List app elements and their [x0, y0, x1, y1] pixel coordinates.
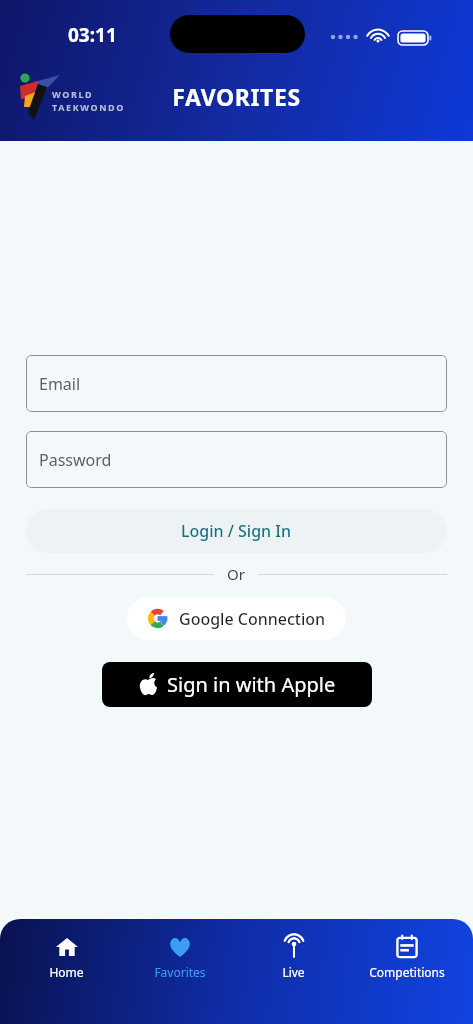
staticText: Or — [227, 564, 245, 584]
staticText: Password — [39, 449, 112, 471]
staticText: Email — [39, 373, 81, 395]
other: Home — [55, 935, 79, 959]
button[interactable]: Email — [26, 355, 447, 412]
staticText: Google Connection — [179, 608, 326, 630]
button[interactable]: Login / Sign In — [26, 509, 447, 553]
staticText: Live — [282, 964, 305, 980]
staticText: WORLD — [52, 88, 94, 100]
staticText: Favorites — [154, 964, 206, 980]
button[interactable]: Google Connection — [127, 597, 346, 640]
staticText: Competitions — [369, 964, 445, 980]
other: Live — [282, 935, 306, 959]
button[interactable]: Live — [246, 933, 341, 982]
button[interactable]: Password — [26, 431, 447, 488]
staticText: 03:11 — [68, 22, 117, 48]
button[interactable]: Competitions — [359, 933, 454, 982]
staticText: Home — [49, 964, 84, 980]
other: Competitions — [395, 935, 419, 959]
staticText: TAEKWONDO — [52, 101, 125, 113]
button[interactable]: Home — [19, 933, 114, 982]
button[interactable]: Favorites — [132, 933, 227, 982]
staticText: Sign in with Apple — [167, 671, 336, 698]
staticText: FAVORITES — [0, 81, 473, 112]
button[interactable]: Sign in with Apple — [102, 662, 372, 707]
other: Favorites — [168, 935, 192, 959]
staticText: Login / Sign In — [181, 520, 292, 542]
